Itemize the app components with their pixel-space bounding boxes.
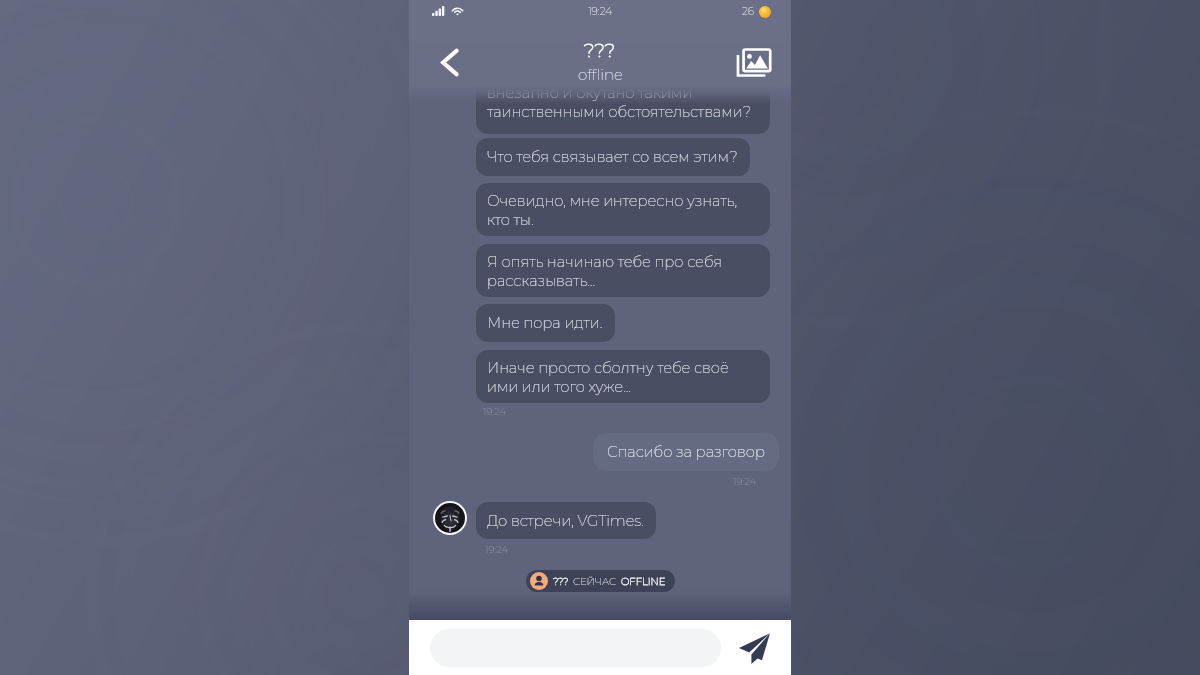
button[interactable]: Send [737, 627, 771, 669]
staticText: 19:24 [588, 5, 612, 18]
button[interactable]: Back [432, 45, 466, 79]
staticText: Спасибо за разговор [607, 443, 765, 461]
staticText: Я опять начинаю тебе про себя рассказыва… [487, 253, 722, 289]
staticText: offline [578, 65, 623, 83]
staticText: 19:24 [733, 475, 756, 487]
staticText: Мне пора идти. [487, 314, 603, 332]
staticText: Что тебя связывает со всем этим? [487, 148, 738, 166]
staticText: OFFLINE [621, 575, 666, 587]
button[interactable]: Очевидно, мне интересно узнать, кто ты. [476, 183, 770, 236]
staticText: ??? [584, 39, 617, 62]
button[interactable]: Я опять начинаю тебе про себя рассказыва… [476, 244, 770, 297]
button[interactable]: Мне пора идти. [476, 304, 615, 342]
staticText: 26 [742, 5, 754, 18]
staticText: 19:24 [485, 543, 508, 555]
staticText: До встречи, VGTimes. [487, 512, 644, 530]
button[interactable]: Иначе просто сболтну тебе своё ими или т… [476, 350, 770, 403]
staticText: 19:24 [483, 405, 506, 417]
button[interactable]: Gallery [735, 43, 773, 81]
button[interactable]: Что тебя связывает со всем этим? [476, 138, 750, 176]
staticText: Иначе просто сболтну тебе своё ими или т… [487, 359, 729, 395]
button[interactable]: ??? [526, 570, 675, 592]
button[interactable]: внезапно и окутано такими таинственными … [476, 72, 770, 134]
staticText: внезапно и окутано такими таинственными … [487, 84, 752, 120]
button[interactable]: До встречи, VGTimes. [476, 502, 656, 539]
staticText: Очевидно, мне интересно узнать, кто ты. [487, 192, 738, 228]
staticText: СЕЙЧАС [573, 575, 617, 587]
staticText: ??? [553, 575, 569, 587]
button[interactable]: Спасибо за разговор [593, 433, 779, 471]
